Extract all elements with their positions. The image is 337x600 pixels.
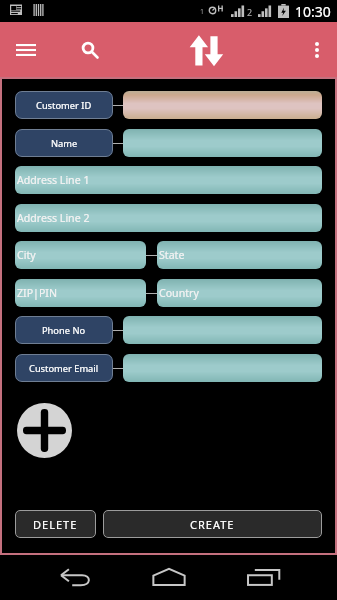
- staticText: CREATE: [190, 517, 235, 532]
- button[interactable]: Customer ID: [15, 91, 113, 119]
- button[interactable]: DELETE: [15, 510, 96, 538]
- staticText: DELETE: [33, 517, 78, 532]
- staticText: City: [17, 248, 36, 262]
- button[interactable]: Menu: [8, 32, 44, 68]
- button[interactable]: Recents: [245, 563, 283, 591]
- staticText: 2: [247, 6, 253, 18]
- staticText: Address Line 2: [17, 211, 90, 225]
- staticText: 10:30: [295, 2, 331, 21]
- button[interactable]: [123, 91, 322, 119]
- button[interactable]: Address Line 2: [15, 204, 322, 232]
- button[interactable]: [123, 316, 322, 344]
- staticText: Country: [159, 286, 199, 300]
- staticText: Address Line 1: [17, 173, 90, 187]
- staticText: State: [159, 248, 185, 262]
- button[interactable]: More options: [299, 32, 334, 67]
- staticText: Name: [51, 137, 78, 150]
- button[interactable]: [123, 129, 322, 157]
- button[interactable]: State: [157, 241, 322, 269]
- button[interactable]: Add: [17, 403, 72, 458]
- staticText: Customer ID: [36, 99, 92, 112]
- button[interactable]: City: [15, 241, 146, 269]
- button[interactable]: CREATE: [103, 510, 322, 538]
- button[interactable]: Customer Email: [15, 354, 113, 382]
- staticText: Phone No: [42, 324, 86, 337]
- button[interactable]: Sort: [185, 33, 225, 69]
- button[interactable]: Address Line 1: [15, 166, 322, 194]
- button[interactable]: Home: [151, 564, 186, 590]
- staticText: Customer Email: [29, 362, 99, 375]
- button[interactable]: Name: [15, 129, 113, 157]
- staticText: ZIP|PIN: [17, 286, 57, 300]
- button[interactable]: Search: [70, 30, 106, 66]
- button[interactable]: Country: [157, 279, 322, 307]
- button[interactable]: [123, 354, 322, 382]
- button[interactable]: ZIP|PIN: [15, 279, 146, 307]
- staticText: 1: [200, 7, 205, 17]
- button[interactable]: Back: [54, 562, 96, 594]
- button[interactable]: Phone No: [15, 316, 113, 344]
